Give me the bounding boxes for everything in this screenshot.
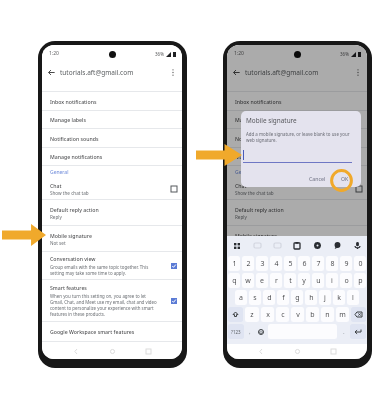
button[interactable]: n bbox=[321, 307, 334, 322]
staticText: Notification sounds bbox=[235, 135, 284, 142]
button[interactable]: Conversation view bbox=[227, 252, 367, 279]
staticText: w bbox=[245, 276, 251, 286]
button[interactable]: Smart features bbox=[42, 280, 182, 321]
staticText: h bbox=[309, 293, 314, 303]
button[interactable]: 2 bbox=[242, 256, 254, 271]
button[interactable]: 4 bbox=[270, 256, 282, 271]
staticText: Add a mobile signature, or leave blank t… bbox=[246, 131, 355, 144]
button[interactable]: Notification sounds bbox=[42, 129, 182, 147]
button[interactable]: z bbox=[245, 307, 259, 322]
button[interactable]: Emoji bbox=[327, 236, 347, 255]
button[interactable]: Clipboard bbox=[287, 236, 307, 255]
button[interactable]: t bbox=[284, 273, 296, 288]
button[interactable]: h bbox=[305, 290, 317, 305]
button[interactable]: 8 bbox=[326, 256, 338, 271]
button[interactable]: GIF bbox=[247, 236, 267, 255]
button[interactable]: u bbox=[312, 273, 324, 288]
button[interactable]: Home bbox=[279, 344, 315, 359]
button[interactable]: Manage labels bbox=[42, 111, 182, 128]
staticText: 8 bbox=[330, 259, 335, 269]
button[interactable]: Back bbox=[46, 67, 57, 78]
button[interactable]: w bbox=[242, 273, 254, 288]
button[interactable]: j bbox=[319, 290, 331, 305]
button[interactable]: g bbox=[291, 290, 303, 305]
button[interactable]: s bbox=[249, 290, 261, 305]
button[interactable]: Smart features bbox=[227, 280, 367, 321]
button[interactable]: Default reply action bbox=[42, 200, 182, 225]
button[interactable]: x bbox=[261, 307, 274, 322]
staticText: General bbox=[235, 169, 254, 176]
button[interactable]: Cancel bbox=[305, 173, 330, 184]
button[interactable]: 5 bbox=[284, 256, 296, 271]
button[interactable]: k bbox=[333, 290, 345, 305]
staticText: 1:20 bbox=[234, 50, 244, 57]
button[interactable]: Default reply action bbox=[227, 200, 367, 225]
button[interactable]: o bbox=[340, 273, 352, 288]
staticText: 6 bbox=[302, 259, 307, 269]
button[interactable]: Backspace bbox=[351, 307, 366, 322]
button[interactable]: Manage notifications bbox=[227, 148, 367, 165]
button[interactable]: v bbox=[291, 307, 304, 322]
staticText: Inbox notifications bbox=[235, 98, 282, 105]
button[interactable]: Home bbox=[94, 344, 130, 359]
button[interactable]: Stickers bbox=[267, 236, 287, 255]
button[interactable]: m bbox=[336, 307, 349, 322]
staticText: j bbox=[324, 293, 326, 303]
button[interactable]: 3 bbox=[256, 256, 268, 271]
button[interactable]: c bbox=[276, 307, 289, 322]
button[interactable]: More options bbox=[352, 67, 363, 78]
button[interactable]: Mobile signature bbox=[227, 226, 367, 251]
button[interactable]: a bbox=[235, 290, 247, 305]
button[interactable]: q bbox=[228, 273, 240, 288]
button[interactable]: 7 bbox=[312, 256, 324, 271]
button[interactable]: Inbox notifications bbox=[227, 92, 367, 110]
button[interactable]: OK bbox=[336, 173, 354, 184]
button[interactable]: b bbox=[306, 307, 319, 322]
staticText: z bbox=[250, 310, 254, 320]
button[interactable]: Recents bbox=[130, 344, 166, 359]
button[interactable]: Period bbox=[338, 324, 349, 339]
button[interactable]: Apps bbox=[227, 236, 247, 255]
button[interactable]: e bbox=[256, 273, 268, 288]
button[interactable]: Notification sounds bbox=[227, 129, 367, 147]
button[interactable]: l bbox=[347, 290, 359, 305]
button[interactable]: 1 bbox=[228, 256, 240, 271]
button[interactable]: More options bbox=[167, 67, 178, 78]
button[interactable]: f bbox=[277, 290, 289, 305]
button[interactable]: Shift bbox=[228, 307, 243, 322]
staticText: Show the chat tab bbox=[235, 190, 274, 196]
button[interactable]: Manage notifications bbox=[42, 148, 182, 165]
button[interactable]: 0 bbox=[354, 256, 366, 271]
button[interactable]: Enter bbox=[350, 324, 366, 339]
button[interactable]: r bbox=[270, 273, 282, 288]
button[interactable]: Inbox notifications bbox=[42, 92, 182, 110]
button[interactable]: Settings bbox=[307, 236, 327, 255]
button[interactable]: Manage labels bbox=[227, 111, 367, 128]
button[interactable]: 6 bbox=[298, 256, 310, 271]
button[interactable]: Chat bbox=[42, 179, 182, 199]
staticText: 5 bbox=[288, 259, 293, 269]
button[interactable]: Comma bbox=[245, 324, 255, 339]
button[interactable]: i bbox=[326, 273, 338, 288]
button[interactable]: ?123 bbox=[228, 324, 244, 339]
staticText: Conversation view bbox=[235, 255, 281, 262]
button[interactable]: Back bbox=[231, 67, 242, 78]
button[interactable]: Google Workspace smart features bbox=[227, 322, 367, 341]
button[interactable]: Chat bbox=[227, 179, 367, 199]
button[interactable]: d bbox=[263, 290, 275, 305]
staticText: c bbox=[281, 310, 285, 320]
button[interactable]: Recents bbox=[315, 344, 351, 359]
staticText: u bbox=[316, 276, 321, 286]
button[interactable]: 9 bbox=[340, 256, 352, 271]
button[interactable]: Emoji bbox=[255, 324, 267, 339]
button[interactable]: Conversation view bbox=[42, 252, 182, 279]
staticText: . bbox=[343, 328, 345, 336]
button[interactable]: y bbox=[298, 273, 310, 288]
button[interactable]: Google Workspace smart features bbox=[42, 322, 182, 341]
button[interactable]: Mobile signature bbox=[42, 226, 182, 251]
button[interactable]: p bbox=[354, 273, 366, 288]
button[interactable]: Voice input bbox=[347, 236, 367, 255]
